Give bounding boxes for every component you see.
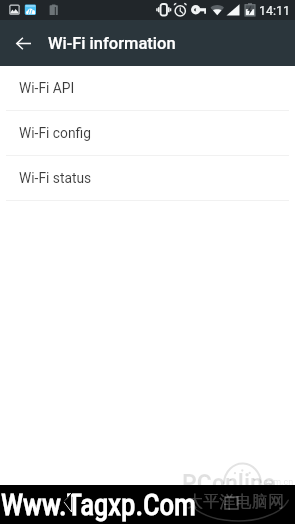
- staticText: .com.cn: [261, 477, 294, 488]
- button[interactable]: Wi-Fi config: [0, 111, 295, 155]
- button[interactable]: Navigate up: [1, 21, 45, 65]
- button[interactable]: Wi-Fi status: [0, 156, 295, 200]
- staticText: Wi-Fi status: [19, 170, 92, 186]
- staticText: PConline: [182, 470, 276, 497]
- button[interactable]: Wi-Fi API: [0, 66, 295, 110]
- staticText: Wi-Fi information: [48, 34, 176, 53]
- staticText: 14:11: [259, 3, 291, 18]
- staticText: Wi-Fi config: [19, 125, 91, 141]
- staticText: Wi-Fi API: [19, 80, 75, 96]
- staticText: 太平洋电脑网: [187, 492, 285, 512]
- staticText: Www.Tagxp.Com: [1, 488, 196, 522]
